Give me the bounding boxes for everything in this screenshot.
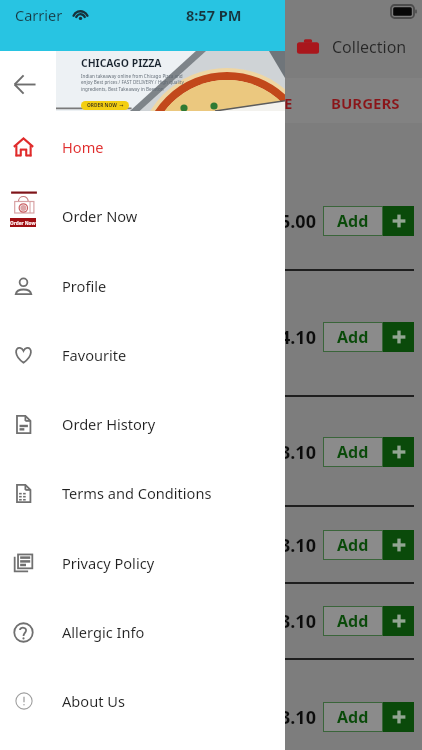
button[interactable]: Add — [323, 322, 414, 352]
button[interactable]: Profile — [0, 262, 285, 310]
button[interactable]: Add — [323, 606, 414, 636]
staticText: Collection — [332, 36, 407, 58]
staticText: 3.10 — [280, 440, 316, 465]
staticText: Add — [337, 210, 369, 232]
staticText: 3.10 — [280, 705, 316, 730]
staticText: 3.10 — [280, 609, 316, 634]
button[interactable]: Order Now — [0, 192, 285, 240]
staticText: ORDER NOW → — [87, 102, 124, 109]
staticText: Home — [62, 137, 104, 157]
staticText: Favourite — [62, 345, 127, 365]
button[interactable]: Favourite — [0, 331, 285, 379]
staticText: BURGERS — [331, 93, 400, 113]
staticText: Add — [337, 706, 369, 728]
staticText: CHICAGO PIZZA — [81, 56, 162, 70]
staticText: Profile — [62, 276, 107, 296]
button[interactable]: Terms and Conditions — [0, 469, 285, 517]
button[interactable]: Add — [323, 702, 414, 732]
staticText: 5.00 — [280, 209, 316, 234]
staticText: Carrier — [15, 5, 63, 25]
staticText: Allergic Info — [62, 622, 145, 642]
button[interactable]: Add — [323, 530, 414, 560]
staticText: Add — [337, 441, 369, 463]
button[interactable]: About Us — [0, 677, 285, 725]
staticText: Add — [337, 326, 369, 348]
button[interactable]: Add — [323, 437, 414, 467]
button[interactable]: Allergic Info — [0, 608, 285, 656]
button[interactable]: Add — [323, 206, 414, 236]
staticText: Order Now — [62, 206, 138, 226]
button[interactable]: Order History — [0, 400, 285, 448]
staticText: Terms and Conditions — [62, 483, 212, 503]
staticText: Add — [337, 534, 369, 556]
staticText: 8:57 PM — [186, 5, 242, 25]
staticText: 3.10 — [280, 533, 316, 558]
button[interactable]: Back — [7, 67, 41, 101]
staticText: Order Now — [10, 220, 36, 226]
staticText: Order History — [62, 414, 156, 434]
staticText: Indian takeaway online from Chicago Pizz… — [81, 73, 184, 93]
button[interactable]: Home — [0, 123, 285, 171]
staticText: E — [284, 93, 293, 113]
staticText: 4.10 — [280, 325, 316, 350]
button[interactable]: CHICAGO PIZZA — [56, 51, 285, 111]
staticText: About Us — [62, 691, 125, 711]
button[interactable]: Privacy Policy — [0, 539, 285, 587]
staticText: Privacy Policy — [62, 553, 155, 573]
staticText: Add — [337, 610, 369, 632]
button[interactable]: Collection — [296, 32, 407, 62]
